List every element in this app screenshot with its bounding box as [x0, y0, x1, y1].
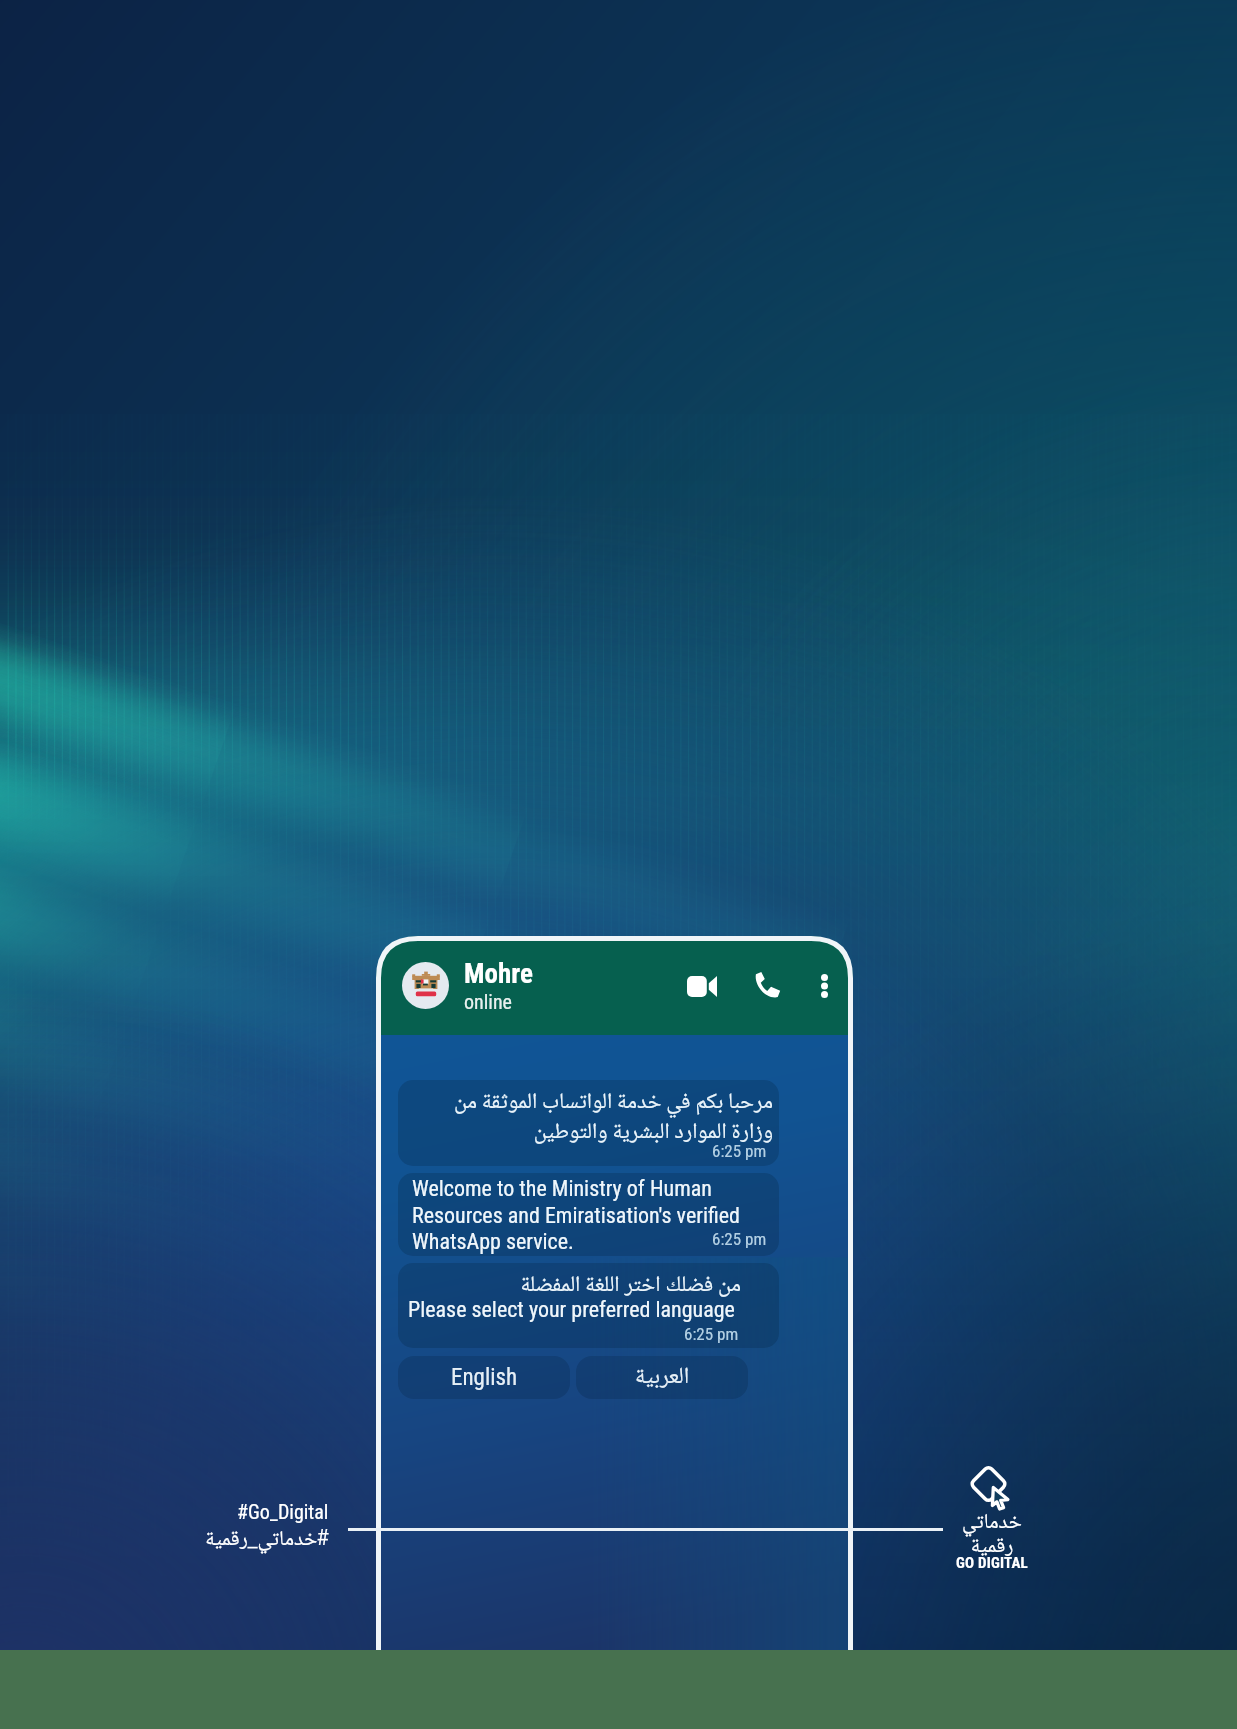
- button[interactable]: العربية: [576, 1356, 748, 1399]
- button[interactable]: Video call: [676, 958, 728, 1014]
- staticText: مرحبا بكم في خدمة الواتساب الموثقة من وز…: [408, 1084, 773, 1152]
- staticText: العربية: [635, 1358, 690, 1397]
- staticText: رقمية: [949, 1530, 1035, 1566]
- staticText: 6:25 pm: [712, 1229, 767, 1249]
- button[interactable]: More options: [808, 958, 840, 1014]
- staticText: #Go_Digital: [237, 1500, 329, 1523]
- button[interactable]: Voice call: [743, 958, 791, 1014]
- staticText: online: [464, 990, 512, 1013]
- staticText: #خدماتي_رقمية: [205, 1523, 329, 1559]
- staticText: 6:25 pm: [712, 1141, 767, 1161]
- staticText: خدماتي: [949, 1506, 1035, 1542]
- staticText: GO DIGITAL: [949, 1554, 1035, 1572]
- button[interactable]: English: [398, 1356, 570, 1399]
- staticText: Mohre: [464, 958, 533, 990]
- staticText: English: [451, 1364, 518, 1391]
- staticText: Please select your preferred language: [408, 1297, 735, 1323]
- staticText: 6:25 pm: [684, 1324, 739, 1344]
- staticText: Welcome to the Ministry of Human Resourc…: [412, 1176, 769, 1254]
- staticText: من فضلك اختر اللغة المفضلة: [398, 1267, 741, 1304]
